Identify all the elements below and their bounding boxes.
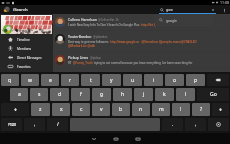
button[interactable]: More options bbox=[220, 6, 228, 14]
staticText: b bbox=[119, 106, 123, 113]
staticText: q bbox=[8, 77, 12, 84]
staticText: h bbox=[121, 91, 125, 98]
staticText: . bbox=[172, 121, 174, 128]
staticText: p bbox=[194, 77, 198, 84]
button[interactable]: , bbox=[24, 118, 45, 131]
staticText: @Funny_Truth bbox=[73, 61, 93, 65]
button[interactable]: z bbox=[31, 103, 50, 116]
staticText: Best way to get new followers bbox=[68, 40, 110, 44]
button[interactable]: d bbox=[50, 88, 69, 101]
staticText: @Venusfuse @josephs.macro@CPAGLED @deede… bbox=[140, 40, 227, 44]
button[interactable]: Home bbox=[110, 133, 121, 144]
button[interactable]: x bbox=[52, 103, 70, 116]
button[interactable]: Back bbox=[88, 133, 99, 144]
button[interactable]: Favorites bbox=[0, 62, 53, 71]
staticText: x bbox=[60, 106, 63, 113]
button[interactable]: a bbox=[10, 88, 28, 101]
staticText: w bbox=[28, 77, 32, 84]
button[interactable]: YouterBandon bbox=[53, 34, 230, 55]
staticText: @ColleenHar 2h bbox=[97, 18, 119, 22]
staticText: @Modturk.Liz @abh bbox=[68, 44, 96, 48]
button[interactable]: . bbox=[162, 118, 183, 131]
staticText: , bbox=[34, 121, 36, 128]
button[interactable]: j bbox=[134, 88, 153, 101]
button[interactable]: g bbox=[92, 88, 111, 101]
button[interactable]: Shift bbox=[212, 103, 229, 116]
staticText: y bbox=[110, 77, 113, 84]
staticText: Direct Messages bbox=[17, 56, 42, 60]
button[interactable]: Direct Messages bbox=[0, 53, 53, 62]
staticText: YouterBandon bbox=[68, 34, 92, 39]
staticText: c bbox=[80, 106, 83, 113]
button[interactable]: Go bbox=[197, 88, 229, 101]
button[interactable]: , bbox=[185, 118, 206, 131]
staticText: ? bbox=[200, 106, 203, 113]
button[interactable]: s bbox=[30, 88, 48, 101]
button[interactable]: App icon bbox=[3, 6, 10, 13]
staticText: l bbox=[185, 91, 187, 98]
button[interactable]: c bbox=[72, 103, 90, 116]
button[interactable]: e bbox=[41, 74, 59, 86]
button[interactable]: ? bbox=[192, 103, 210, 116]
staticText: f bbox=[80, 91, 82, 98]
staticText: r bbox=[69, 77, 72, 84]
staticText: o bbox=[173, 77, 177, 84]
staticText: v bbox=[100, 106, 103, 113]
button[interactable]: n bbox=[132, 103, 150, 116]
button[interactable]: y bbox=[102, 74, 121, 86]
button[interactable]: Colleen Harrelson bbox=[53, 17, 230, 34]
staticText: Colleen Harrelson bbox=[68, 17, 97, 22]
button[interactable]: Timeline bbox=[0, 35, 53, 44]
staticText: , bbox=[195, 121, 197, 128]
staticText: I wish New Easy Info To Don't Search On … bbox=[68, 23, 141, 27]
button[interactable]: k bbox=[155, 88, 174, 101]
button[interactable]: r bbox=[61, 74, 79, 86]
button[interactable]: ?123 bbox=[1, 118, 22, 131]
staticText: g bbox=[100, 91, 104, 98]
staticText: e bbox=[49, 77, 52, 84]
staticText: Favorites bbox=[17, 65, 31, 69]
button[interactable]: Pickup Lines bbox=[53, 55, 230, 72]
staticText: RT bbox=[68, 61, 73, 65]
button[interactable]: Recents bbox=[132, 133, 143, 144]
staticText: Mentions bbox=[17, 47, 32, 51]
button[interactable]: i bbox=[144, 74, 163, 86]
button[interactable]: google bbox=[155, 14, 213, 26]
button[interactable]: ! bbox=[172, 103, 190, 116]
button[interactable]: / bbox=[47, 118, 68, 131]
button[interactable]: Backspace bbox=[207, 74, 229, 86]
staticText: http://bit.ly/RUE2cEP bbox=[141, 23, 170, 27]
staticText: u bbox=[131, 77, 135, 84]
staticText: goo bbox=[166, 7, 173, 12]
button[interactable]: m bbox=[152, 103, 170, 116]
staticText: Go bbox=[210, 91, 217, 98]
staticText: z bbox=[39, 106, 42, 113]
staticText: s bbox=[38, 91, 41, 98]
button[interactable]: b bbox=[112, 103, 130, 116]
staticText: i bbox=[153, 77, 155, 84]
button[interactable]: q bbox=[1, 74, 19, 86]
staticText: t bbox=[90, 77, 92, 84]
staticText: ?123 bbox=[8, 122, 16, 127]
button[interactable]: Shift bbox=[1, 103, 29, 116]
staticText: @ytbandon bbox=[92, 35, 108, 39]
staticText: j bbox=[143, 91, 145, 98]
staticText: 11:08 bbox=[220, 0, 229, 5]
staticText: n bbox=[139, 106, 143, 113]
button[interactable]: f bbox=[71, 88, 90, 101]
button[interactable]: Mentions bbox=[0, 44, 53, 53]
button[interactable]: w bbox=[21, 74, 39, 86]
staticText: m bbox=[159, 106, 164, 113]
button[interactable]: o bbox=[165, 74, 184, 86]
button[interactable]: t bbox=[81, 74, 100, 86]
button[interactable]: h bbox=[113, 88, 132, 101]
button[interactable]: p bbox=[186, 74, 205, 86]
button[interactable]: l bbox=[176, 88, 195, 101]
staticText: google bbox=[166, 18, 177, 22]
button[interactable]: goo bbox=[159, 6, 216, 14]
button[interactable]: u bbox=[123, 74, 142, 86]
staticText: a bbox=[18, 91, 21, 98]
button[interactable]: Emoji bbox=[208, 118, 229, 131]
button[interactable]: v bbox=[92, 103, 110, 116]
